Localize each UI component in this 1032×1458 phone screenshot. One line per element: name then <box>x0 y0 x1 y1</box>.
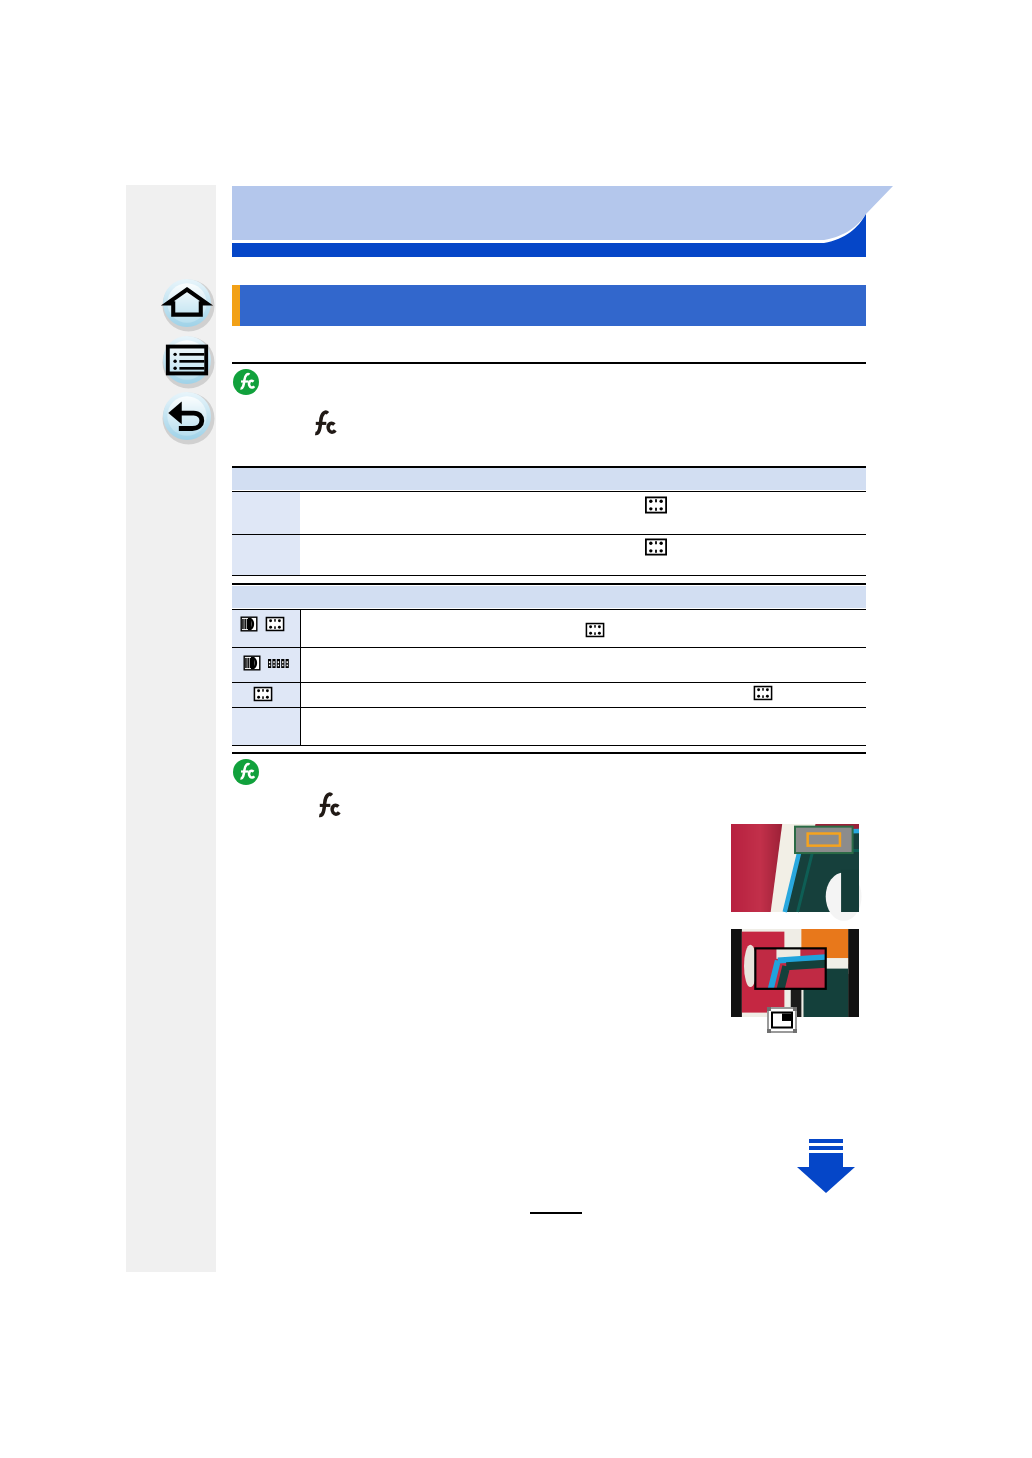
button[interactable]: Home <box>163 279 211 327</box>
button[interactable]: Next page <box>800 1145 848 1193</box>
button[interactable]: Contents <box>163 336 211 384</box>
button[interactable]: Back <box>163 392 211 440</box>
